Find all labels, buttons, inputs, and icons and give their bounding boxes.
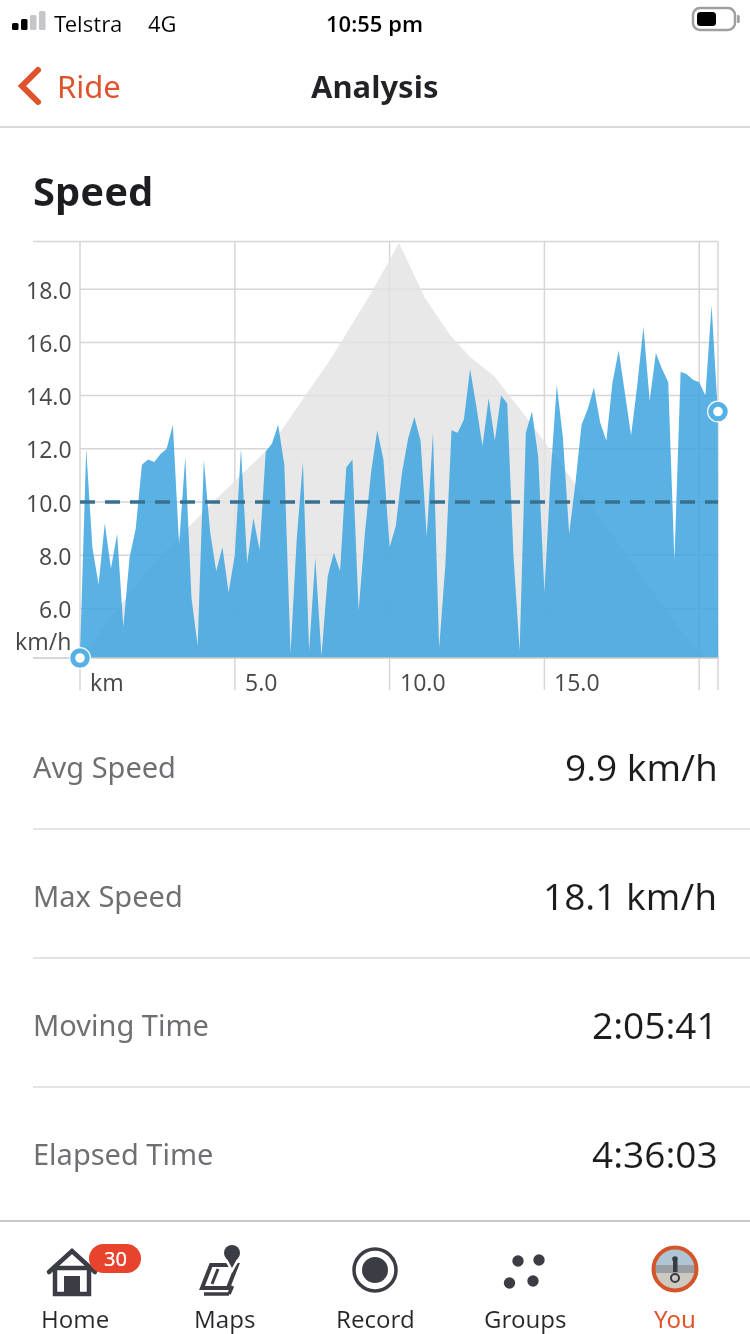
button[interactable]: You [600, 1222, 750, 1334]
staticText: Moving Time [33, 1005, 209, 1044]
button[interactable]: 30 [0, 1222, 150, 1334]
staticText: 18.0 [26, 274, 72, 305]
staticText: 15.0 [554, 666, 600, 696]
staticText: You [654, 1302, 696, 1334]
staticText: Groups [484, 1302, 567, 1334]
staticText: km/h [15, 625, 72, 656]
staticText: 16.0 [26, 327, 72, 358]
staticText: 10.0 [400, 666, 446, 696]
staticText: 8.0 [39, 540, 72, 571]
staticText: 4G [148, 8, 177, 36]
staticText: Home [41, 1302, 110, 1334]
staticText: 30 [104, 1245, 127, 1272]
staticText: 10.0 [26, 487, 72, 518]
staticText: 18.1 km/h [543, 870, 718, 920]
staticText: 12.0 [26, 433, 72, 464]
staticText: Maps [194, 1302, 256, 1334]
button[interactable]: Record [300, 1222, 450, 1334]
staticText: 5.0 [245, 666, 278, 696]
button[interactable]: Maps [150, 1222, 300, 1334]
button[interactable]: Ride [10, 56, 150, 116]
staticText: Record [336, 1302, 415, 1334]
button[interactable]: Groups [450, 1222, 600, 1334]
button[interactable]: Avg Speed [0, 702, 750, 830]
staticText: Elapsed Time [33, 1134, 214, 1173]
staticText: 4:36:03 [592, 1128, 718, 1178]
staticText: 14.0 [26, 380, 72, 411]
staticText: 2:05:41 [592, 999, 718, 1049]
staticText: Telstra [54, 8, 123, 36]
staticText: Analysis [311, 65, 439, 107]
staticText: km [90, 666, 124, 696]
staticText: 10:55 pm [326, 8, 424, 36]
staticText: Max Speed [33, 876, 183, 915]
button[interactable]: Elapsed Time [0, 1089, 750, 1217]
staticText: 9.9 km/h [565, 741, 718, 791]
staticText: Avg Speed [33, 747, 176, 786]
staticText: 6.0 [39, 593, 72, 624]
staticText: Ride [57, 65, 121, 107]
staticText: Speed [33, 163, 154, 217]
button[interactable]: Max Speed [0, 831, 750, 959]
button[interactable]: Moving Time [0, 960, 750, 1088]
